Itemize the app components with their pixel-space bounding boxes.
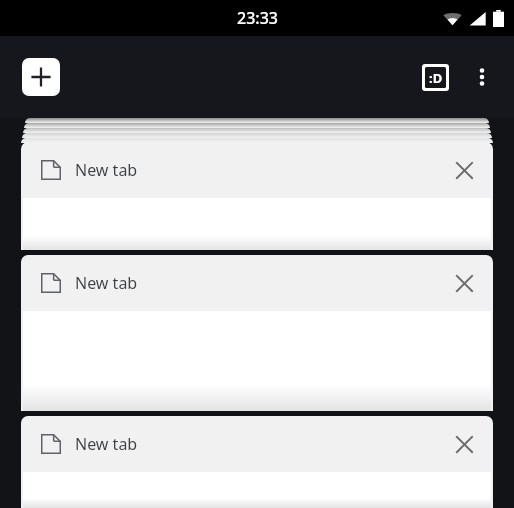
button[interactable]: New tab bbox=[21, 416, 493, 508]
button[interactable]: New tab bbox=[21, 142, 493, 250]
button[interactable]: Switch profile bbox=[418, 60, 452, 94]
button[interactable]: New tab bbox=[22, 58, 60, 96]
button[interactable]: New tab bbox=[21, 255, 493, 411]
staticText: 23:33 bbox=[237, 7, 278, 29]
staticText: New tab bbox=[75, 433, 138, 455]
button[interactable]: More options bbox=[460, 55, 504, 99]
button[interactable]: Close tab bbox=[443, 149, 485, 191]
button[interactable]: Close tab bbox=[443, 262, 485, 304]
staticText: New tab bbox=[75, 159, 138, 181]
staticText: :D bbox=[429, 69, 443, 87]
staticText: New tab bbox=[75, 272, 138, 294]
button[interactable]: Close tab bbox=[443, 423, 485, 465]
